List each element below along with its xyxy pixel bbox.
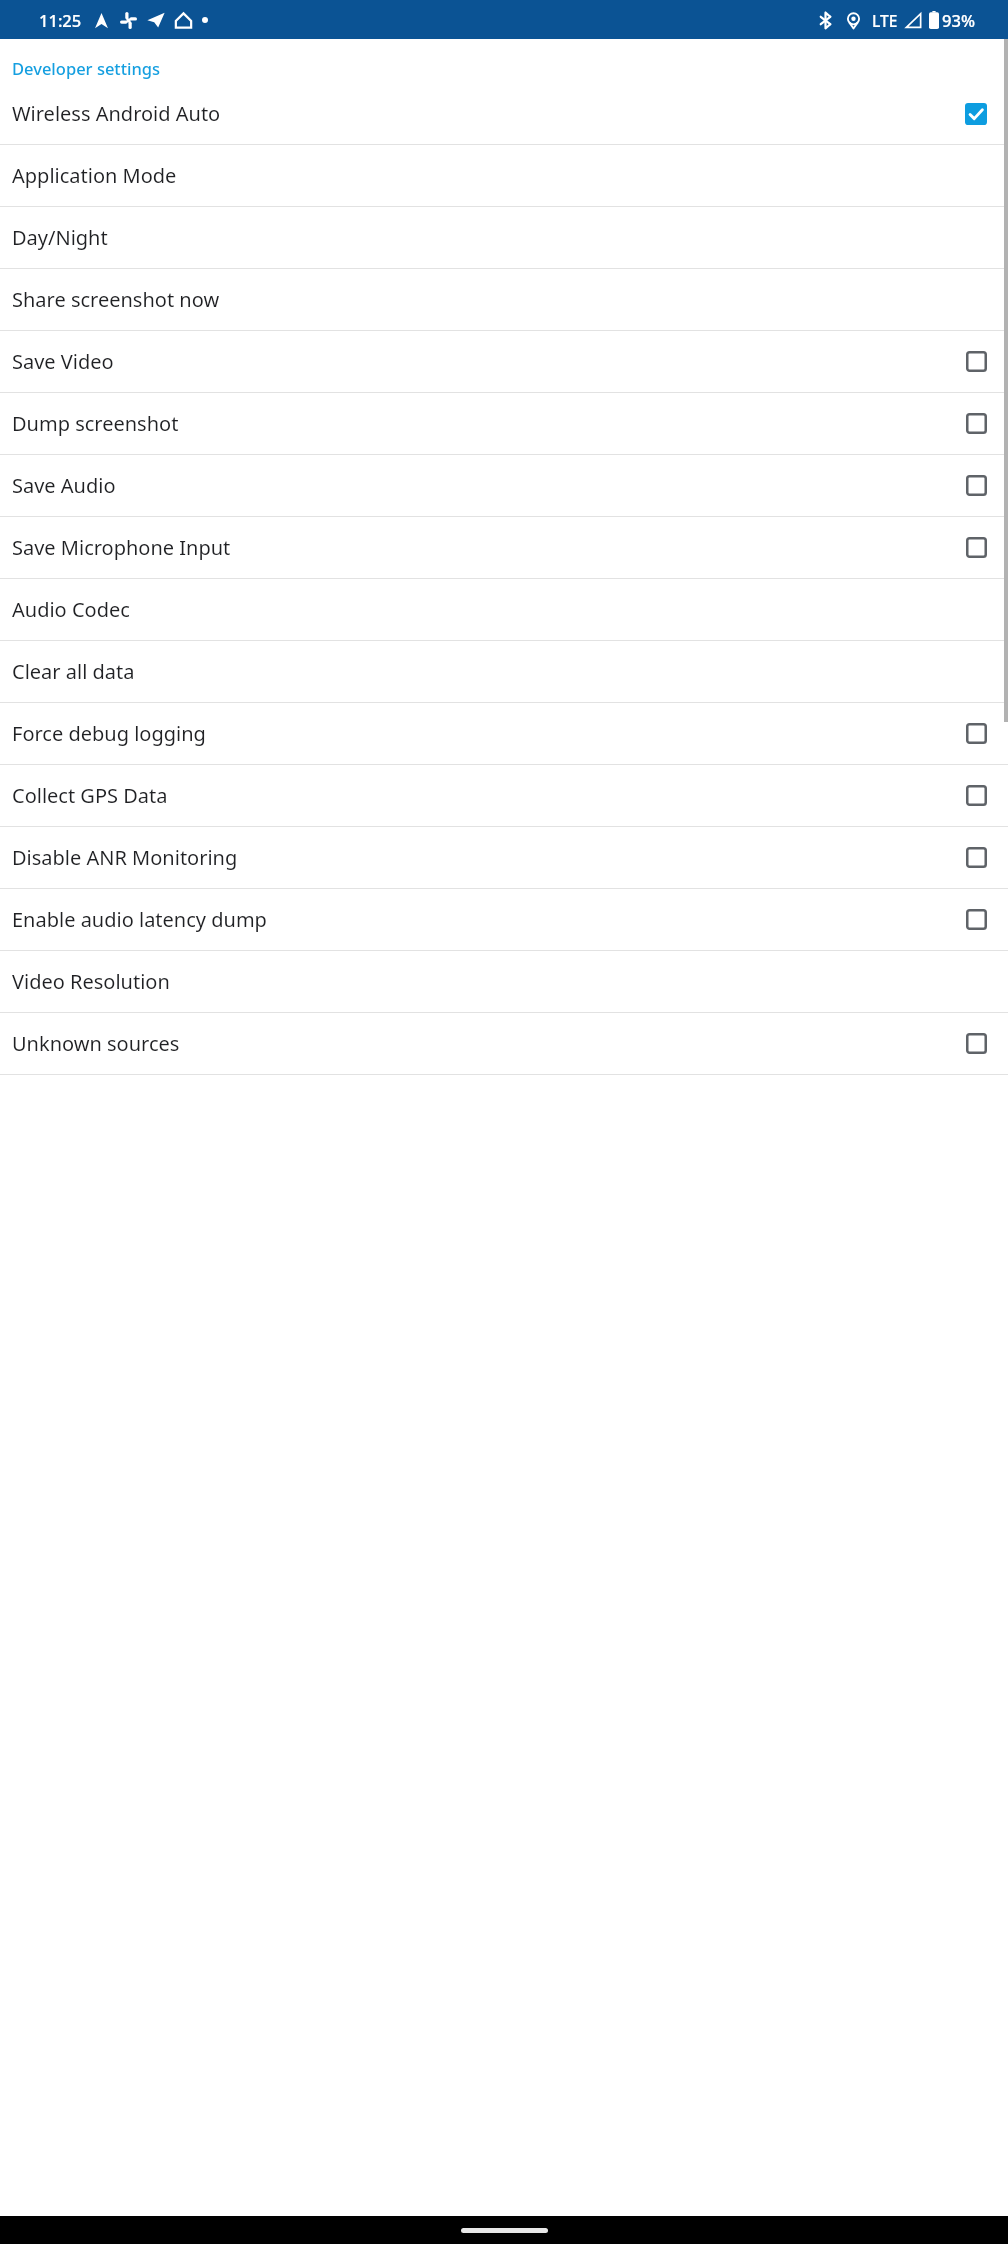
staticText: Clear all data bbox=[12, 658, 987, 685]
staticText: Save Video bbox=[12, 348, 966, 375]
staticText: Developer settings bbox=[12, 57, 161, 79]
staticText: Force debug logging bbox=[12, 720, 966, 747]
other: Unchecked bbox=[966, 351, 987, 372]
button[interactable]: Video Resolution bbox=[0, 951, 1008, 1012]
other: Checked bbox=[965, 103, 987, 125]
button[interactable]: Save Microphone Input bbox=[0, 517, 1008, 578]
other: Unchecked bbox=[966, 847, 987, 868]
staticText: Dump screenshot bbox=[12, 410, 966, 437]
staticText: Day/Night bbox=[12, 224, 987, 251]
button[interactable]: Enable audio latency dump bbox=[0, 889, 1008, 950]
staticText: 11:25 bbox=[39, 9, 82, 31]
button[interactable]: Save Video bbox=[0, 331, 1008, 392]
other: Unchecked bbox=[966, 785, 987, 806]
staticText: Collect GPS Data bbox=[12, 782, 966, 809]
button[interactable]: Dump screenshot bbox=[0, 393, 1008, 454]
other: Unchecked bbox=[966, 723, 987, 744]
button[interactable]: Application Mode bbox=[0, 145, 1008, 206]
other: Unchecked bbox=[966, 1033, 987, 1054]
staticText: Application Mode bbox=[12, 162, 987, 189]
button[interactable]: Audio Codec bbox=[0, 579, 1008, 640]
other: Unchecked bbox=[966, 537, 987, 558]
button[interactable]: Wireless Android Auto bbox=[0, 83, 1008, 144]
staticText: 93% bbox=[942, 9, 975, 31]
staticText: LTE bbox=[872, 10, 898, 31]
other: Unchecked bbox=[966, 475, 987, 496]
other: Unchecked bbox=[966, 413, 987, 434]
staticText: Unknown sources bbox=[12, 1030, 966, 1057]
other: Unchecked bbox=[966, 909, 987, 930]
staticText: Wireless Android Auto bbox=[12, 100, 965, 127]
staticText: Save Audio bbox=[12, 472, 966, 499]
button[interactable]: Save Audio bbox=[0, 455, 1008, 516]
staticText: Share screenshot now bbox=[12, 286, 987, 313]
staticText: Save Microphone Input bbox=[12, 534, 966, 561]
button[interactable]: Force debug logging bbox=[0, 703, 1008, 764]
button[interactable]: Disable ANR Monitoring bbox=[0, 827, 1008, 888]
button[interactable]: Clear all data bbox=[0, 641, 1008, 702]
button[interactable]: Unknown sources bbox=[0, 1013, 1008, 1074]
button[interactable]: Day/Night bbox=[0, 207, 1008, 268]
button[interactable]: Collect GPS Data bbox=[0, 765, 1008, 826]
staticText: Video Resolution bbox=[12, 968, 987, 995]
staticText: Disable ANR Monitoring bbox=[12, 844, 966, 871]
staticText: Audio Codec bbox=[12, 596, 987, 623]
button[interactable]: Share screenshot now bbox=[0, 269, 1008, 330]
staticText: Enable audio latency dump bbox=[12, 906, 966, 933]
